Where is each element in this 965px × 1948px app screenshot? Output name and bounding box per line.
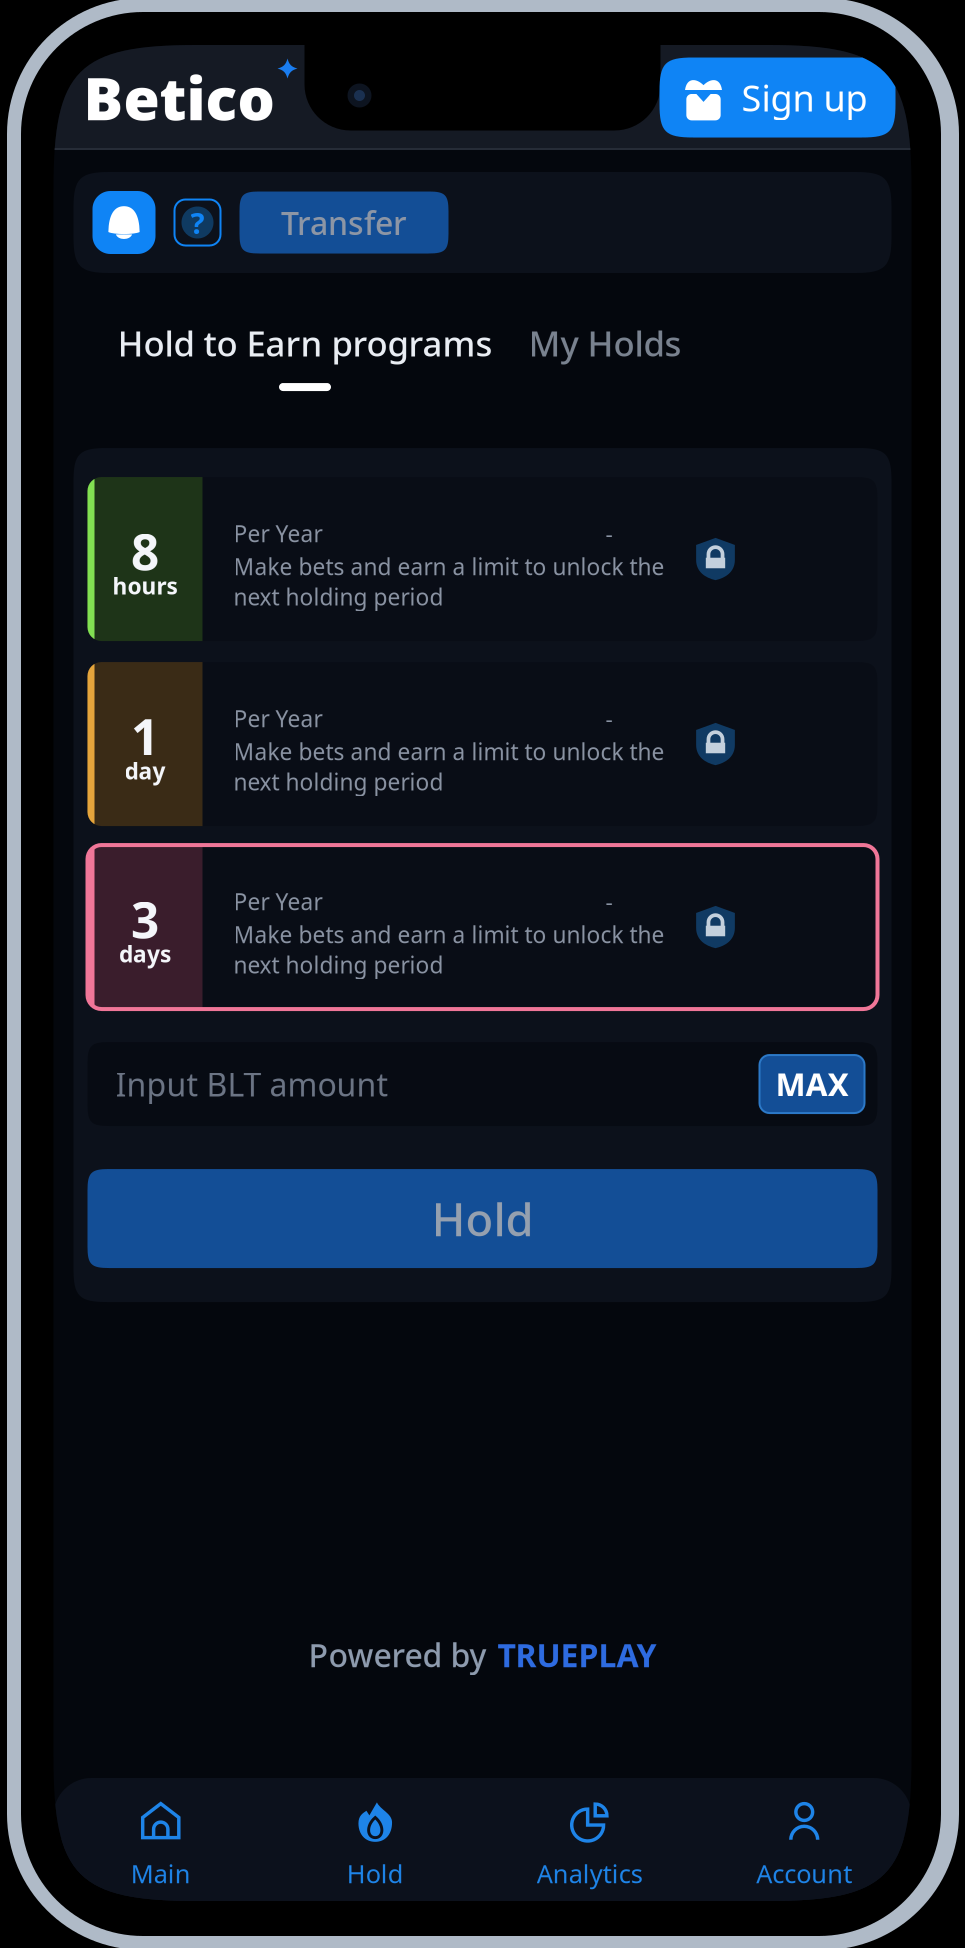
staticText: ? xyxy=(190,203,204,242)
staticText: Hold to Earn programs xyxy=(117,320,492,366)
staticText: Make bets and earn a limit to unlock the… xyxy=(233,919,664,980)
staticText: - xyxy=(605,703,612,733)
staticText: Account xyxy=(756,1857,852,1890)
button[interactable]: 1 xyxy=(87,662,877,826)
staticText: Hold xyxy=(431,1188,533,1249)
staticText: Input BLT amount xyxy=(115,1063,388,1105)
staticText: Powered by xyxy=(308,1633,486,1676)
staticText: Per Year xyxy=(233,518,322,548)
button[interactable]: 3 xyxy=(87,845,877,1009)
button[interactable]: 8 xyxy=(87,477,877,641)
staticText: TRUEPLAY xyxy=(497,1633,656,1676)
button[interactable]: Account xyxy=(697,1789,911,1890)
staticText: 3 xyxy=(131,886,159,952)
button[interactable]: MAX xyxy=(759,1055,864,1113)
staticText: Make bets and earn a limit to unlock the… xyxy=(233,551,664,612)
button[interactable]: Transfer xyxy=(239,191,448,253)
staticText: hours xyxy=(112,571,177,601)
staticText: Betico xyxy=(83,58,274,136)
button[interactable]: Notifications xyxy=(92,191,155,254)
staticText: days xyxy=(119,939,171,969)
staticText: Transfer xyxy=(281,201,407,244)
staticText: MAX xyxy=(775,1063,848,1105)
staticText: Per Year xyxy=(233,886,322,916)
button[interactable]: Hold xyxy=(268,1789,482,1890)
staticText: - xyxy=(605,886,612,916)
staticText: My Holds xyxy=(528,320,681,366)
staticText: Sign up xyxy=(741,74,867,121)
staticText: Make bets and earn a limit to unlock the… xyxy=(233,736,664,797)
staticText: Per Year xyxy=(233,703,322,733)
button[interactable]: Sign up xyxy=(659,57,895,137)
button[interactable]: My Holds xyxy=(528,320,681,391)
staticText: 1 xyxy=(131,703,159,769)
staticText: Main xyxy=(131,1857,191,1890)
button[interactable]: Help xyxy=(174,199,220,245)
staticText: 8 xyxy=(131,518,159,584)
button[interactable]: Analytics xyxy=(482,1789,697,1890)
button[interactable]: Hold xyxy=(87,1169,877,1268)
button[interactable]: Hold to Earn programs xyxy=(117,320,492,391)
staticText: Analytics xyxy=(537,1857,643,1890)
staticText: - xyxy=(605,518,612,548)
button[interactable]: Main xyxy=(53,1789,268,1890)
staticText: Hold xyxy=(347,1857,404,1890)
staticText: day xyxy=(124,756,165,786)
